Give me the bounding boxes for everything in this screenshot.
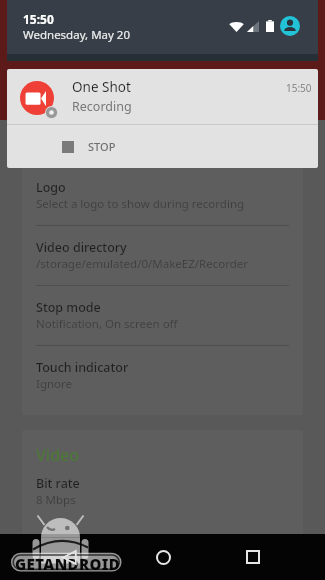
staticText: Recording (72, 98, 132, 115)
button[interactable]: Stop mode (22, 286, 303, 345)
staticText: Video directory (36, 239, 127, 256)
staticText: Logo (36, 179, 66, 196)
staticText: GETANDROID (15, 554, 121, 574)
staticText: Notification, On screen off (36, 316, 178, 332)
button[interactable]: Logo (22, 147, 303, 225)
staticText: STOP (88, 139, 116, 154)
button[interactable]: Video directory (22, 226, 303, 285)
staticText: Ignore (36, 376, 73, 392)
button[interactable]: Home (146, 540, 180, 574)
button[interactable]: Touch indicator (22, 346, 303, 405)
staticText: Wednesday, May 20 (23, 27, 131, 43)
button[interactable]: STOP (7, 125, 318, 168)
staticText: /storage/emulated/0/MakeEZ/Recorder (36, 256, 249, 272)
staticText: Video (36, 444, 80, 466)
staticText: Select a logo to show during recording (36, 196, 245, 212)
button[interactable]: Recents (236, 540, 270, 574)
staticText: Touch indicator (36, 359, 129, 376)
staticText: 8 Mbps (36, 492, 76, 508)
staticText: One Shot (72, 78, 131, 96)
button[interactable]: One Shot (7, 69, 318, 168)
staticText: 15:50 (23, 11, 54, 27)
staticText: Bit rate (36, 475, 80, 492)
other: Account (280, 16, 300, 36)
button[interactable]: Back (52, 540, 86, 574)
staticText: 15:50 (286, 81, 312, 95)
staticText: Stop mode (36, 299, 101, 316)
